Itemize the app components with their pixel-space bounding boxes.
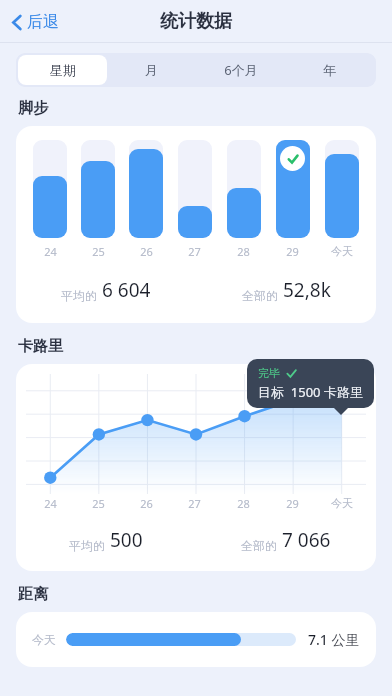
- staticText: 今天: [331, 496, 353, 510]
- staticText: 星期: [50, 62, 76, 78]
- staticText: 月: [145, 62, 158, 78]
- staticText: 27: [188, 244, 201, 259]
- button[interactable]: 后退: [6, 8, 63, 36]
- staticText: 目标 1500 卡路里: [258, 383, 363, 401]
- staticText: 6 604: [102, 277, 151, 303]
- staticText: 27: [188, 496, 201, 511]
- staticText: 卡路里: [18, 337, 63, 356]
- staticText: 统计数据: [160, 10, 232, 33]
- staticText: 距离: [18, 585, 48, 604]
- staticText: 25: [92, 244, 105, 259]
- staticText: 29: [286, 244, 299, 259]
- staticText: 24: [44, 244, 57, 259]
- staticText: 25: [92, 496, 105, 511]
- staticText: 24: [44, 496, 57, 511]
- staticText: 52,8k: [283, 277, 331, 303]
- staticText: 7.1 公里: [308, 630, 360, 649]
- button[interactable]: 星期: [18, 55, 107, 85]
- staticText: 29: [286, 496, 299, 511]
- staticText: 500: [110, 527, 143, 553]
- staticText: 平均的: [69, 538, 105, 553]
- staticText: 28: [237, 244, 250, 259]
- staticText: 26: [140, 244, 153, 259]
- staticText: 全部的: [241, 538, 277, 553]
- staticText: 平均的: [61, 288, 97, 303]
- button[interactable]: 24: [16, 126, 376, 323]
- staticText: 完毕: [258, 366, 280, 380]
- button[interactable]: 今天: [16, 612, 376, 667]
- staticText: 28: [237, 496, 250, 511]
- button[interactable]: 6个月: [196, 55, 285, 85]
- staticText: 今天: [331, 244, 353, 258]
- staticText: 全部的: [242, 288, 278, 303]
- staticText: 脚步: [18, 99, 48, 118]
- staticText: 6个月: [224, 61, 258, 79]
- staticText: 后退: [27, 12, 59, 32]
- button[interactable]: 年: [285, 55, 374, 85]
- button[interactable]: 月: [107, 55, 196, 85]
- staticText: 年: [323, 62, 336, 78]
- staticText: 7 066: [282, 527, 331, 553]
- staticText: 今天: [32, 632, 56, 647]
- button[interactable]: 24: [16, 364, 376, 571]
- staticText: 26: [140, 496, 153, 511]
